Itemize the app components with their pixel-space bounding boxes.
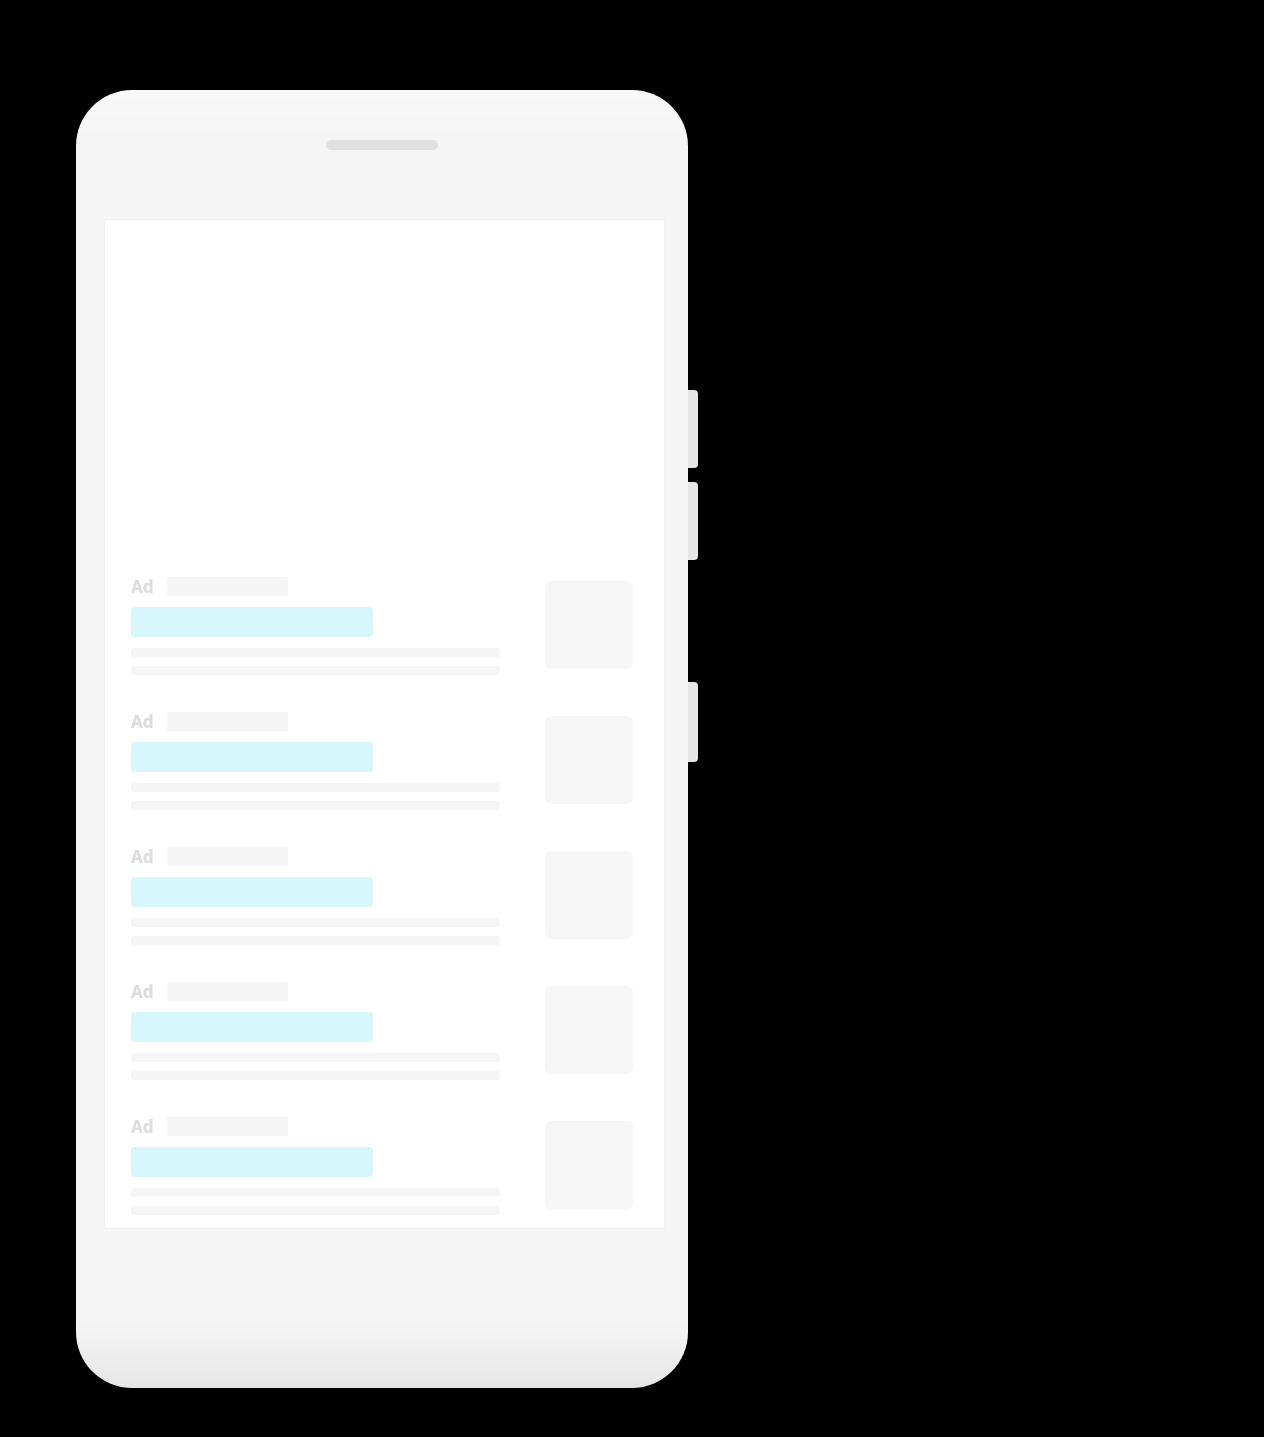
staticText: Ad — [131, 710, 154, 733]
button[interactable]: Sponsored ad 2 — [105, 701, 664, 836]
staticText: Ad — [131, 845, 154, 868]
staticText: Ad — [131, 1115, 154, 1138]
button[interactable]: Sponsored ad 4 — [105, 971, 664, 1106]
button[interactable]: Sponsored ad 1 — [105, 566, 664, 701]
staticText: Ad — [131, 575, 154, 598]
button[interactable]: Sponsored ad 5 — [105, 1106, 664, 1241]
staticText: Ad — [131, 980, 154, 1003]
button[interactable]: Sponsored ad 3 — [105, 836, 664, 971]
